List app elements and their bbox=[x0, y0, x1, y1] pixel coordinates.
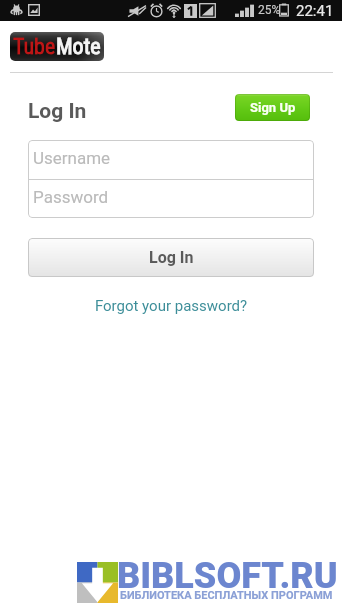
button[interactable]: Forgot your password? bbox=[0, 297, 342, 315]
staticText: Log In bbox=[149, 248, 194, 267]
staticText: 25% bbox=[258, 3, 281, 17]
button[interactable]: Sign Up bbox=[235, 94, 310, 121]
staticText: BIBLSOFT.RU bbox=[117, 555, 338, 597]
staticText: Username bbox=[33, 148, 111, 168]
staticText: Log In bbox=[28, 99, 87, 124]
staticText: Mote bbox=[56, 34, 101, 60]
staticText: Tube bbox=[13, 34, 56, 60]
staticText: 22:41 bbox=[296, 2, 334, 20]
button[interactable]: Username bbox=[28, 140, 314, 179]
button[interactable]: Password bbox=[28, 180, 314, 218]
button[interactable]: Log In bbox=[28, 238, 314, 277]
button[interactable]: TubeMote home bbox=[10, 32, 104, 61]
staticText: Sign Up bbox=[250, 100, 296, 115]
staticText: Password bbox=[33, 187, 109, 207]
staticText: БИБЛИОТЕКА БЕСПЛАТНЫХ ПРОГРАММ bbox=[120, 589, 333, 602]
